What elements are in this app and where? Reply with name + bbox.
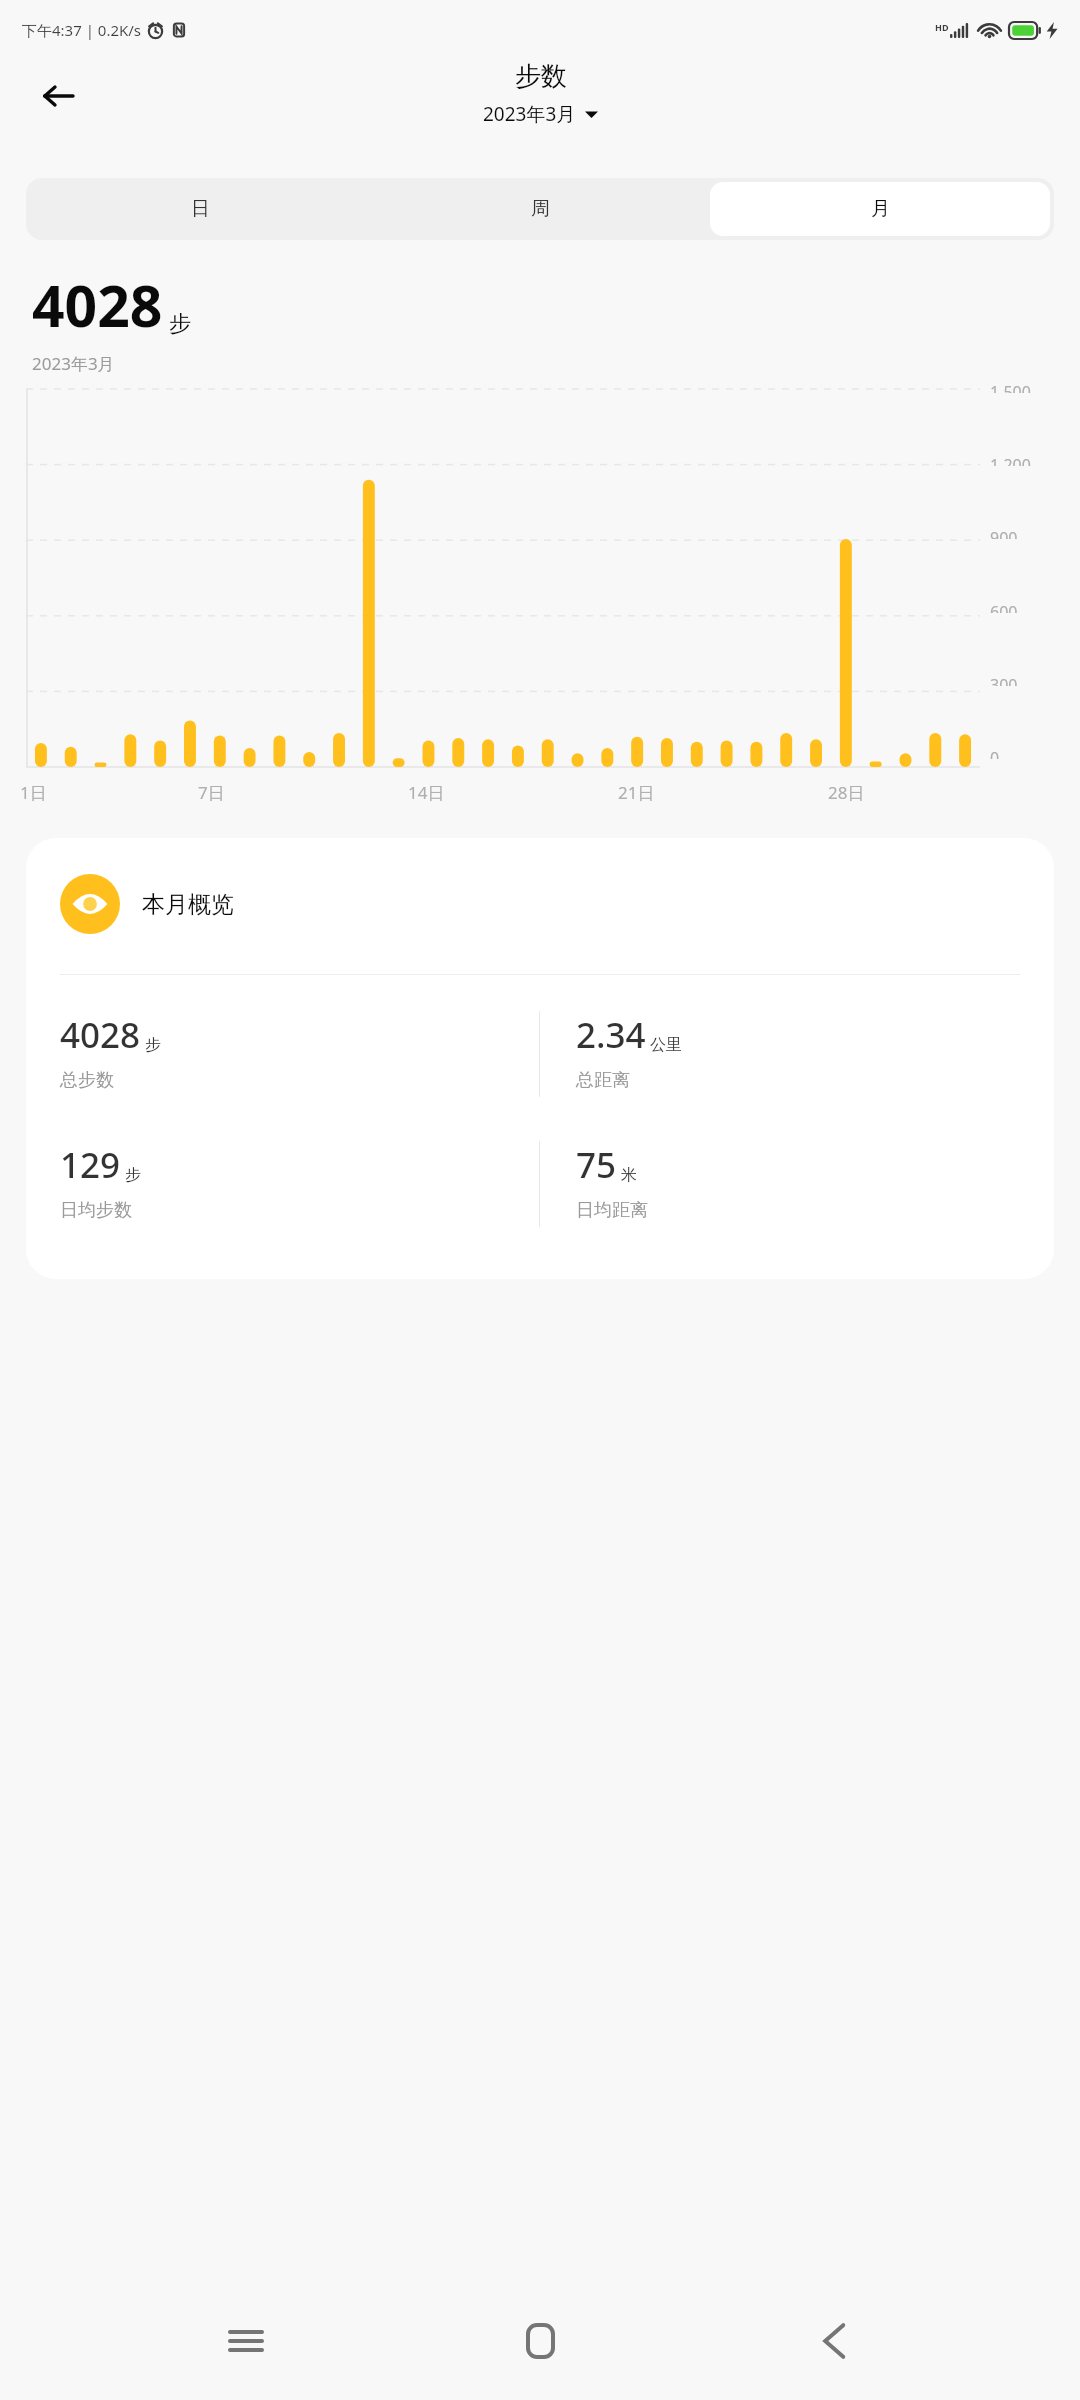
staticText: 步 xyxy=(125,1165,141,1185)
staticText: 总距离 xyxy=(576,1069,630,1092)
staticText: 日 xyxy=(191,197,210,221)
button[interactable]: Home xyxy=(492,2293,588,2389)
button[interactable]: Back xyxy=(786,2293,882,2389)
staticText: 下午4:37 | 0.2K/s xyxy=(22,20,142,40)
staticText: 7日 xyxy=(198,781,225,804)
staticText: HD xyxy=(935,21,949,33)
button[interactable]: 周 xyxy=(370,182,710,236)
staticText: 月 xyxy=(871,197,890,221)
staticText: 0 xyxy=(990,747,1000,759)
staticText: 总步数 xyxy=(60,1069,114,1092)
staticText: 公里 xyxy=(650,1035,682,1055)
staticText: 步数 xyxy=(515,60,567,93)
staticText: 1日 xyxy=(20,781,47,804)
staticText: 2.34 xyxy=(576,1011,646,1059)
staticText: 300 xyxy=(990,674,1018,686)
button[interactable]: 日 xyxy=(30,182,370,236)
staticText: 4028 xyxy=(32,266,163,344)
button[interactable]: 本月概览 xyxy=(26,838,1054,1279)
staticText: 4028 xyxy=(60,1011,141,1059)
staticText: 本月概览 xyxy=(142,890,234,919)
staticText: 129 xyxy=(60,1141,121,1189)
button[interactable]: Back xyxy=(30,68,86,124)
staticText: 2023年3月 xyxy=(483,101,576,127)
staticText: 21日 xyxy=(618,781,655,804)
staticText: 周 xyxy=(531,197,550,221)
button[interactable]: Recents xyxy=(198,2293,294,2389)
button[interactable]: 2023年3月 xyxy=(483,101,598,127)
staticText: 米 xyxy=(621,1165,637,1185)
staticText: 1,200 xyxy=(990,454,1031,466)
staticText: 900 xyxy=(990,527,1018,539)
staticText: 75 xyxy=(576,1141,617,1189)
staticText: 2023年3月 xyxy=(32,352,115,375)
staticText: 14日 xyxy=(408,781,445,804)
staticText: 日均步数 xyxy=(60,1199,132,1222)
staticText: 步 xyxy=(169,310,191,338)
button[interactable]: 月 xyxy=(710,182,1050,236)
staticText: 日均距离 xyxy=(576,1199,648,1222)
staticText: 步 xyxy=(145,1035,161,1055)
staticText: 28日 xyxy=(828,781,865,804)
staticText: 600 xyxy=(990,601,1018,613)
staticText: 1,500 xyxy=(990,381,1031,393)
